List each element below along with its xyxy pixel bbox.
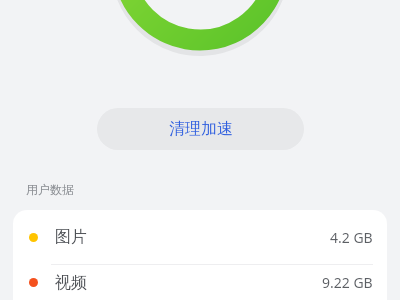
staticText: 用户数据 [26,182,74,197]
staticText: 清理加速 [169,119,233,139]
staticText: 图片 [55,227,87,247]
staticText: 9.22 GB [322,273,373,292]
staticText: 4.2 GB [330,228,373,247]
button[interactable]: 视频 [13,265,387,300]
button[interactable]: 图片 [13,210,387,264]
staticText: 视频 [55,273,87,293]
button[interactable]: 清理加速 [97,108,304,150]
